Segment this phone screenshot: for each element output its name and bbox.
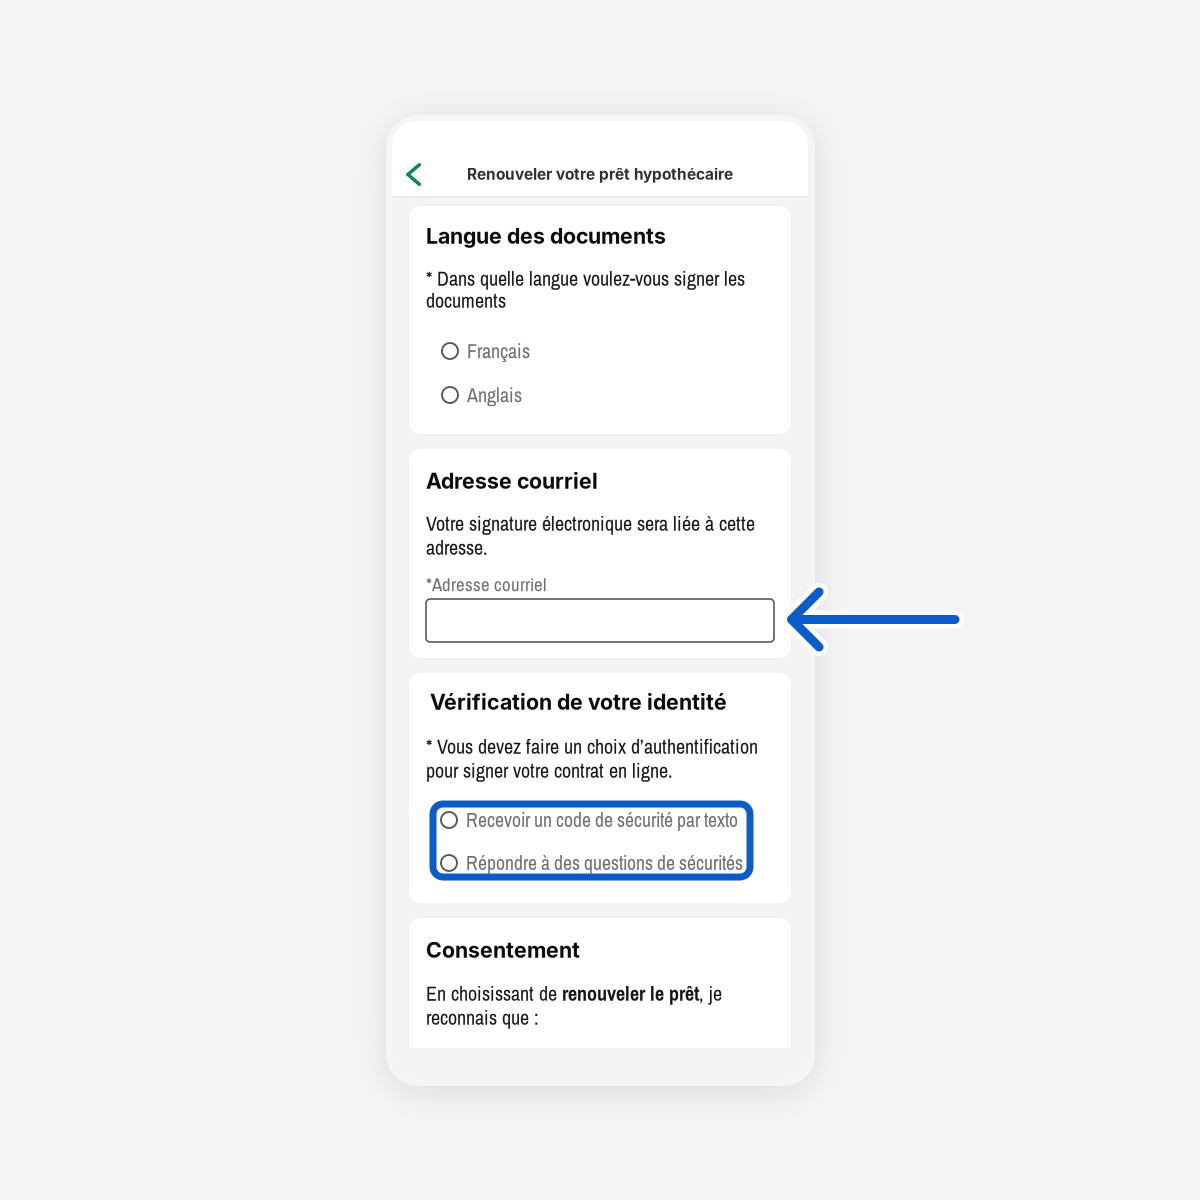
staticText: Répondre à des questions de sécurités: [466, 850, 743, 876]
staticText: , je: [699, 980, 722, 1007]
staticText: Français: [467, 337, 530, 364]
staticText: * Dans quelle langue voulez-vous signer …: [426, 265, 745, 292]
staticText: En choisissant de: [426, 980, 562, 1007]
staticText: pour signer votre contrat en ligne.: [426, 757, 673, 784]
button[interactable]: Retour: [394, 155, 433, 194]
staticText: documents: [426, 287, 506, 314]
button[interactable]: Adresse courriel: [426, 599, 774, 642]
staticText: renouveler le prêt: [562, 980, 699, 1007]
staticText: Renouveler votre prêt hypothécaire: [467, 165, 733, 184]
staticText: Vérification de votre identité: [430, 689, 727, 715]
staticText: Anglais: [467, 381, 522, 408]
staticText: Recevoir un code de sécurité par texto: [466, 807, 738, 833]
button[interactable]: Anglais: [442, 383, 824, 407]
button[interactable]: Recevoir un code de sécurité par texto: [441, 808, 758, 832]
staticText: adresse.: [426, 534, 488, 561]
button[interactable]: Français: [442, 339, 824, 363]
staticText: Votre signature électronique sera liée à…: [426, 510, 755, 537]
staticText: Langue des documents: [426, 223, 666, 249]
staticText: *Adresse courriel: [426, 572, 546, 597]
staticText: Adresse courriel: [426, 468, 598, 494]
button[interactable]: Répondre à des questions de sécurités: [441, 851, 758, 875]
staticText: * Vous devez faire un choix d’authentifi…: [426, 733, 758, 760]
staticText: Consentement: [426, 937, 580, 963]
staticText: reconnais que :: [426, 1004, 539, 1031]
